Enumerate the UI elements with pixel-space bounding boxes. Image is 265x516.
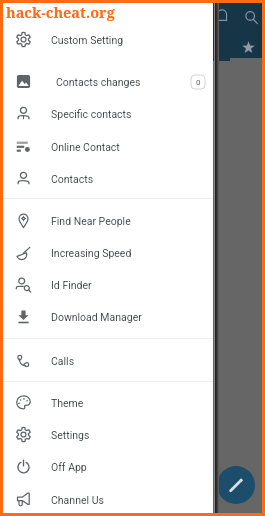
button[interactable]: Settings — [0, 422, 213, 452]
staticText: Contacts changes — [56, 76, 141, 88]
staticText: 0 — [196, 78, 201, 87]
button[interactable]: Find Near People — [0, 208, 213, 238]
staticText: Contacts — [51, 173, 94, 185]
button[interactable]: Theme — [0, 390, 213, 420]
staticText: Off App — [51, 461, 87, 473]
staticText: Id Finder — [51, 279, 92, 291]
staticText: hack-cheat.org — [6, 2, 115, 22]
button[interactable]: Specific contacts — [0, 101, 213, 131]
staticText: Find Near People — [51, 215, 131, 227]
button[interactable]: Search — [243, 9, 259, 25]
button[interactable]: Download Manager — [0, 304, 213, 334]
button[interactable]: Online Contact — [0, 134, 213, 164]
staticText: Settings — [51, 429, 90, 441]
button[interactable]: Calls — [0, 348, 213, 378]
button[interactable]: Off App — [0, 454, 213, 484]
staticText: Download Manager — [51, 311, 142, 323]
button[interactable]: Custom Setting — [0, 27, 213, 57]
button[interactable]: Id Finder — [0, 272, 213, 302]
button[interactable]: Compose — [217, 466, 255, 504]
staticText: Online Contact — [51, 141, 120, 153]
button[interactable]: Increasing Speed — [0, 240, 213, 270]
button[interactable]: Contacts — [0, 166, 213, 196]
button[interactable]: Ghost mode — [214, 7, 230, 23]
staticText: Calls — [51, 355, 75, 367]
staticText: Specific contacts — [51, 108, 132, 120]
staticText: Theme — [51, 397, 84, 409]
button[interactable]: Channel Us — [0, 487, 213, 516]
button[interactable]: Contacts changes — [0, 69, 213, 99]
button[interactable]: Favorites — [241, 40, 255, 54]
staticText: Increasing Speed — [51, 247, 132, 259]
staticText: Custom Setting — [51, 34, 124, 46]
staticText: Channel Us — [51, 494, 104, 506]
